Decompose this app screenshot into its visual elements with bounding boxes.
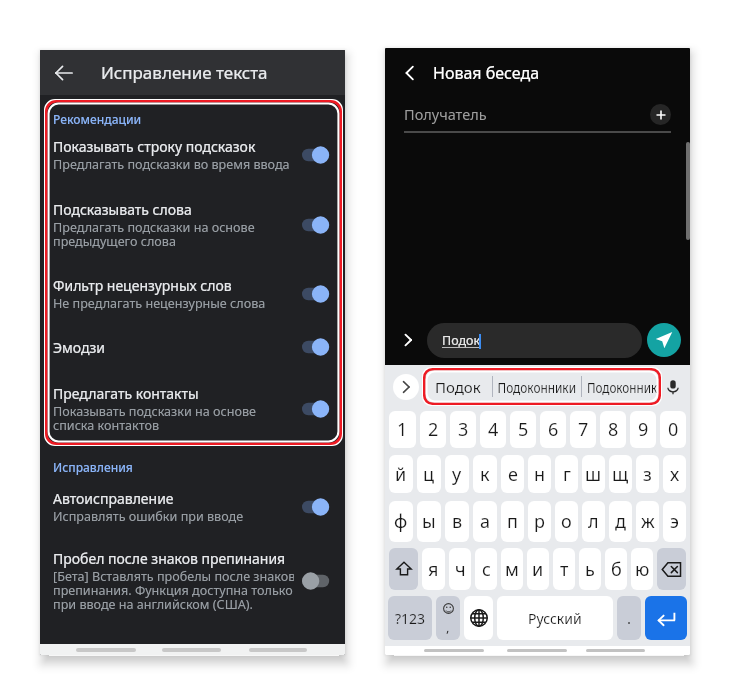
button[interactable]: ж — [636, 501, 659, 542]
button[interactable]: 1 — [389, 411, 416, 448]
button[interactable]: 0 — [660, 411, 686, 448]
button[interactable]: ц — [417, 455, 441, 493]
staticText: т — [560, 557, 569, 582]
button[interactable]: б — [605, 548, 627, 590]
staticText: Новая беседа — [433, 62, 540, 84]
staticText: ф — [394, 509, 408, 534]
button[interactable]: ю — [631, 548, 653, 590]
button[interactable]: Change language — [464, 596, 493, 640]
button[interactable]: Подок — [427, 323, 642, 358]
button[interactable]: н — [528, 455, 551, 493]
button[interactable]: On — [302, 216, 329, 234]
button[interactable]: More suggestions — [393, 374, 419, 400]
button[interactable]: Русский — [497, 596, 613, 640]
button[interactable]: с — [475, 548, 497, 590]
button[interactable]: х — [663, 455, 686, 493]
button[interactable]: в — [445, 501, 469, 542]
staticText: ч — [455, 557, 466, 582]
button[interactable]: д — [609, 501, 632, 542]
button[interactable]: On — [302, 338, 329, 356]
button[interactable]: Add recipient — [650, 104, 671, 125]
staticText: ц — [423, 462, 435, 487]
button[interactable]: On — [302, 400, 329, 418]
button[interactable]: 5 — [510, 411, 536, 448]
button[interactable]: On — [302, 498, 329, 516]
button[interactable]: On — [302, 146, 329, 164]
staticText: у — [452, 462, 462, 487]
button[interactable]: 3 — [450, 411, 476, 448]
staticText: е — [508, 462, 518, 487]
button[interactable]: т — [553, 548, 575, 590]
button[interactable]: л — [582, 501, 605, 542]
button[interactable]: Enter — [645, 596, 687, 640]
button[interactable]: а — [473, 501, 497, 542]
staticText: Подоконники — [497, 377, 576, 397]
button[interactable]: Back — [47, 56, 81, 90]
button[interactable]: ш — [582, 455, 605, 493]
staticText: а — [480, 509, 491, 534]
button[interactable]: Back — [400, 63, 420, 83]
staticText: Получатель — [404, 104, 487, 124]
staticText: ?123 — [395, 609, 426, 628]
button[interactable]: 7 — [570, 411, 596, 448]
button[interactable]: з — [636, 455, 659, 493]
button[interactable]: ч — [449, 548, 471, 590]
button[interactable]: ф — [389, 501, 413, 542]
staticText: ш — [585, 462, 602, 487]
button[interactable]: ы — [417, 501, 441, 542]
button[interactable]: Shift — [389, 548, 418, 590]
button[interactable]: ь — [579, 548, 601, 590]
staticText: ы — [422, 509, 436, 534]
button[interactable]: я — [422, 548, 445, 590]
button[interactable]: Автоисправление — [40, 483, 345, 531]
staticText: Предлагать подсказки во время ввода — [53, 156, 290, 173]
button[interactable]: 4 — [480, 411, 506, 448]
button[interactable]: й — [389, 455, 413, 493]
button[interactable]: . — [617, 596, 641, 640]
staticText: ю — [635, 557, 650, 582]
staticText: ь — [585, 557, 595, 582]
staticText: . — [627, 608, 632, 628]
staticText: 0 — [668, 417, 679, 442]
button[interactable]: 2 — [420, 411, 446, 448]
staticText: и — [532, 557, 544, 582]
button[interactable]: Emoji — [436, 596, 460, 640]
button[interactable]: Эмодзи — [40, 330, 345, 364]
button[interactable]: Пробел после знаков препинания — [40, 543, 345, 619]
button[interactable]: Send — [647, 323, 681, 357]
button[interactable]: Подсказывать слова — [40, 194, 345, 256]
button[interactable]: Voice input — [662, 376, 683, 397]
button[interactable]: Показывать строку подсказок — [40, 131, 345, 179]
button[interactable]: Фильтр нецензурных слов — [40, 270, 345, 318]
button[interactable]: Подоконники — [493, 365, 581, 408]
button[interactable]: 9 — [630, 411, 656, 448]
staticText: Показывать подсказки на основе списка ко… — [53, 403, 256, 434]
button[interactable]: щ — [609, 455, 632, 493]
button[interactable]: р — [528, 501, 551, 542]
button[interactable]: 6 — [540, 411, 566, 448]
staticText: 7 — [578, 417, 589, 442]
button[interactable]: Backspace — [657, 548, 686, 590]
button[interactable]: Предлагать контакты — [40, 378, 345, 440]
button[interactable]: Подок — [423, 365, 492, 408]
button[interactable]: 8 — [600, 411, 626, 448]
button[interactable]: п — [501, 501, 524, 542]
button[interactable]: э — [663, 501, 686, 542]
staticText: р — [534, 509, 545, 534]
button[interactable]: е — [501, 455, 524, 493]
button[interactable]: г — [555, 455, 578, 493]
staticText: Исправления — [53, 459, 133, 475]
staticText: 4 — [488, 417, 499, 442]
button[interactable]: у — [445, 455, 469, 493]
button[interactable]: и — [527, 548, 549, 590]
button[interactable]: ?123 — [388, 596, 432, 640]
button[interactable]: Expand — [398, 330, 418, 350]
button[interactable]: Off — [302, 572, 329, 590]
button[interactable]: Подоконник — [582, 365, 661, 408]
button[interactable]: On — [302, 285, 329, 303]
staticText: б — [611, 557, 622, 582]
button[interactable]: м — [501, 548, 523, 590]
button[interactable]: о — [555, 501, 578, 542]
button[interactable]: к — [473, 455, 497, 493]
staticText: Русский — [528, 609, 582, 628]
